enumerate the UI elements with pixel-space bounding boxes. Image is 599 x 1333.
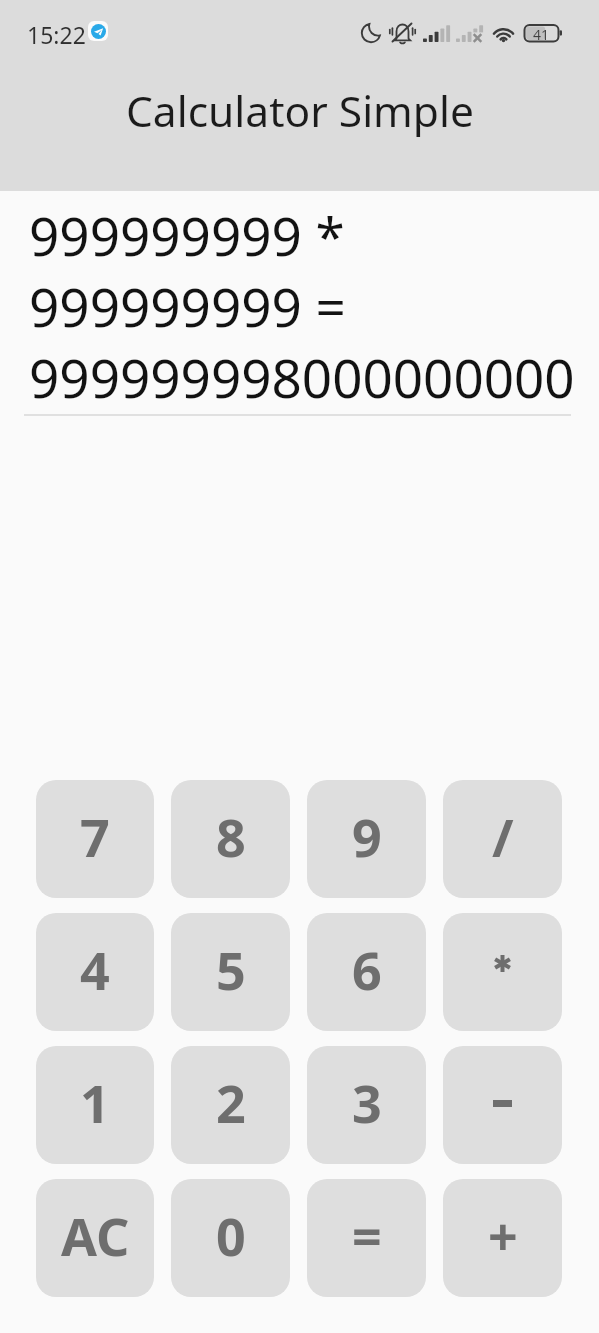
button[interactable]: /: [443, 780, 562, 898]
staticText: 2: [216, 1067, 246, 1138]
button[interactable]: Minus: [443, 1046, 562, 1164]
staticText: 3: [352, 1067, 382, 1138]
staticText: 1: [80, 1067, 110, 1138]
button[interactable]: Multiply: [443, 913, 562, 1031]
button[interactable]: 2: [171, 1046, 290, 1164]
button[interactable]: 7: [36, 780, 154, 898]
staticText: AC: [61, 1200, 130, 1271]
button[interactable]: 9: [307, 780, 426, 898]
staticText: 8: [216, 801, 246, 872]
button[interactable]: 0: [171, 1179, 290, 1297]
staticText: 6: [352, 934, 382, 1005]
button[interactable]: 6: [307, 913, 426, 1031]
button[interactable]: AC: [36, 1179, 154, 1297]
staticText: =: [352, 1200, 382, 1271]
button[interactable]: =: [307, 1179, 426, 1297]
staticText: 999999999 * 999999999 = 9999999980000000…: [29, 199, 594, 413]
button[interactable]: 1: [36, 1046, 154, 1164]
staticText: 0: [216, 1200, 246, 1271]
staticText: Calculator Simple: [126, 82, 474, 140]
button[interactable]: +: [443, 1179, 562, 1297]
staticText: 4: [80, 934, 110, 1005]
staticText: 41: [533, 25, 550, 42]
staticText: 9: [352, 801, 382, 872]
button[interactable]: 4: [36, 913, 154, 1031]
staticText: 7: [80, 801, 110, 872]
button[interactable]: 3: [307, 1046, 426, 1164]
button[interactable]: 8: [171, 780, 290, 898]
staticText: 5: [216, 934, 246, 1005]
staticText: 15:22: [27, 19, 86, 50]
button[interactable]: 5: [171, 913, 290, 1031]
staticText: /: [492, 801, 514, 872]
staticText: +: [488, 1200, 518, 1271]
